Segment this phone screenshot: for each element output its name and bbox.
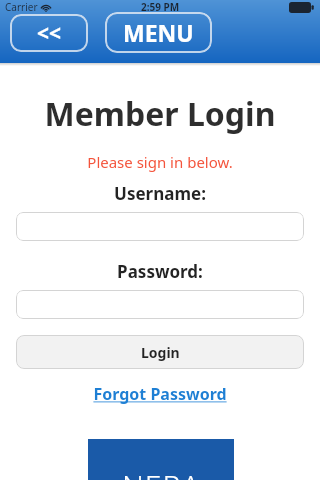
staticText: Password: xyxy=(0,260,320,283)
staticText: NERA xyxy=(122,465,201,480)
button[interactable]: Forgot Password xyxy=(0,383,320,405)
button[interactable]: NERA xyxy=(88,439,234,480)
staticText: Carrier xyxy=(5,0,38,14)
staticText: MENU xyxy=(123,17,194,48)
staticText: Login xyxy=(141,343,180,362)
staticText: Please sign in below. xyxy=(0,152,320,172)
button[interactable] xyxy=(16,212,304,241)
button[interactable]: MENU xyxy=(105,12,212,53)
staticText: Forgot Password xyxy=(93,383,227,405)
button[interactable]: Back xyxy=(10,14,88,52)
staticText: 2:59 PM xyxy=(141,0,180,14)
button[interactable]: Login xyxy=(16,335,304,369)
staticText: Member Login xyxy=(0,92,320,136)
button[interactable] xyxy=(16,290,304,319)
staticText: << xyxy=(37,19,62,48)
staticText: Username: xyxy=(0,182,320,205)
